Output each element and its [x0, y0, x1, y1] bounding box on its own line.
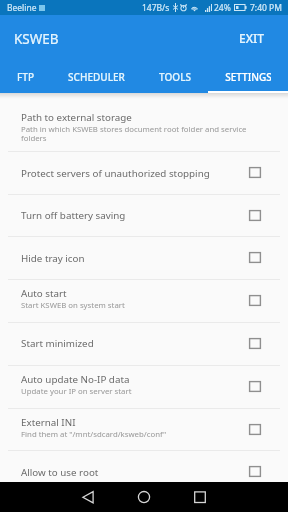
button[interactable]: Toggle Turn off battery saving [249, 210, 261, 221]
staticText: Update your IP on server start [21, 386, 132, 397]
button[interactable]: Allow to use root [0, 451, 288, 482]
button[interactable]: Hide tray icon [0, 237, 288, 279]
button[interactable]: Toggle Allow to use root [249, 466, 261, 477]
staticText: FTP [17, 70, 34, 84]
button[interactable]: EXIT [226, 15, 288, 54]
button[interactable]: External INI [0, 409, 288, 450]
button[interactable]: Auto start [0, 280, 288, 322]
staticText: Allow to use root [21, 466, 99, 479]
button[interactable]: Recent apps [191, 488, 209, 506]
button[interactable]: Toggle Auto update No-IP data [249, 381, 261, 392]
staticText: TOOLS [159, 70, 191, 84]
button[interactable]: Home [135, 488, 153, 506]
staticText: Auto update No-IP data [21, 373, 130, 386]
staticText: Path in which KSWEB stores document root… [21, 124, 266, 143]
button[interactable]: SCHEDULER [51, 60, 142, 93]
button[interactable]: Turn off battery saving [0, 195, 288, 236]
button[interactable]: Back [79, 488, 97, 506]
staticText: Start minimized [21, 337, 94, 350]
button[interactable]: SETTINGS [208, 60, 288, 93]
button[interactable]: Path to external storage [0, 93, 288, 151]
staticText: Turn off battery saving [21, 209, 126, 222]
button[interactable]: Toggle External INI [249, 424, 261, 435]
staticText: KSWEB [14, 30, 59, 48]
staticText: Auto start [21, 287, 67, 300]
button[interactable]: Toggle Start minimized [249, 338, 261, 349]
staticText: 147B/s [142, 2, 170, 14]
button[interactable]: TOOLS [142, 60, 208, 93]
staticText: SCHEDULER [68, 70, 125, 84]
staticText: External INI [21, 416, 76, 429]
staticText: SETTINGS [225, 70, 271, 84]
button[interactable]: Protect servers of unauthorized stopping [0, 152, 288, 194]
staticText: EXIT [239, 30, 265, 46]
button[interactable]: Toggle Hide tray icon [249, 252, 261, 263]
staticText: Find them at "/mnt/sdcard/ksweb/conf" [21, 429, 167, 440]
staticText: Path to external storage [21, 111, 132, 124]
button[interactable]: Start minimized [0, 323, 288, 365]
staticText: Start KSWEB on system start [21, 300, 125, 311]
button[interactable]: FTP [0, 60, 51, 93]
staticText: 24% [214, 2, 231, 14]
button[interactable]: Toggle Protect servers of unauthorized s… [249, 167, 261, 178]
staticText: 7:40 PM [250, 2, 282, 14]
staticText: Hide tray icon [21, 252, 85, 265]
staticText: Protect servers of unauthorized stopping [21, 167, 210, 180]
staticText: Beeline [7, 2, 37, 14]
button[interactable]: Toggle Auto start [249, 295, 261, 306]
button[interactable]: Auto update No-IP data [0, 366, 288, 408]
